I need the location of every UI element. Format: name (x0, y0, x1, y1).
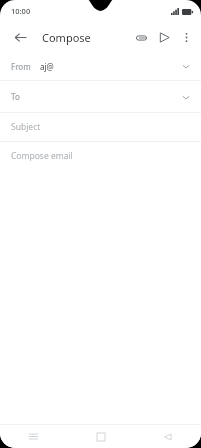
staticText: aj@ (40, 61, 54, 72)
button[interactable]: Back (134, 425, 201, 448)
button[interactable]: Subject (0, 113, 201, 141)
button[interactable]: Attach file (130, 26, 153, 49)
staticText: To (11, 91, 20, 102)
button[interactable]: Send (153, 26, 176, 49)
button[interactable]: More options (176, 27, 197, 48)
button[interactable]: Compose email (0, 142, 201, 170)
button[interactable]: Home (67, 425, 134, 448)
button[interactable]: Recent apps (0, 425, 67, 448)
button[interactable]: Back (8, 25, 32, 49)
staticText: From (11, 61, 31, 72)
button[interactable]: To (0, 81, 201, 112)
staticText: Compose (42, 30, 91, 45)
staticText: Subject (11, 121, 41, 133)
staticText: Compose email (11, 150, 73, 162)
button[interactable]: From (0, 52, 201, 80)
staticText: 10:00 (11, 6, 31, 16)
